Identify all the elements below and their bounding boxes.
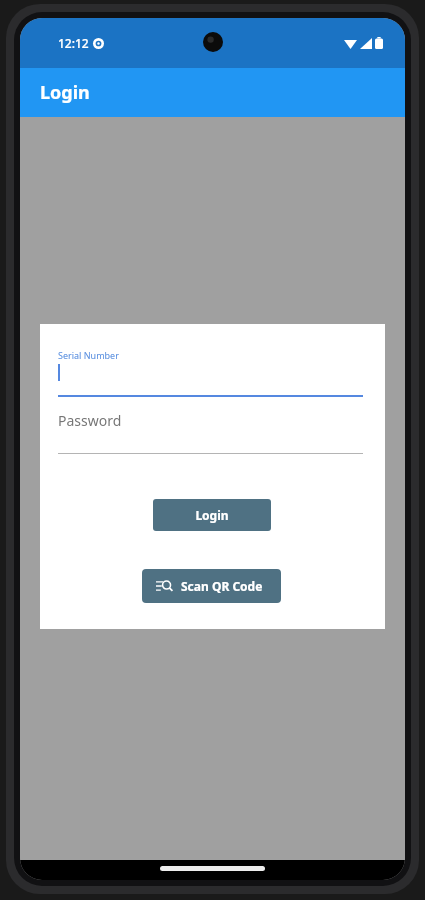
staticText: Password (58, 411, 122, 430)
button[interactable]: Login (153, 499, 271, 531)
other: Home gesture handle (160, 866, 265, 871)
button[interactable]: Password (58, 409, 363, 454)
button[interactable]: Serial Number (58, 349, 363, 397)
button[interactable]: Scan QR Code (142, 569, 281, 603)
staticText: Scan QR Code (181, 578, 263, 594)
staticText: 12:12 (58, 35, 89, 51)
staticText: Serial Number (58, 349, 119, 361)
staticText: Login (195, 507, 229, 523)
staticText: Login (40, 80, 90, 105)
